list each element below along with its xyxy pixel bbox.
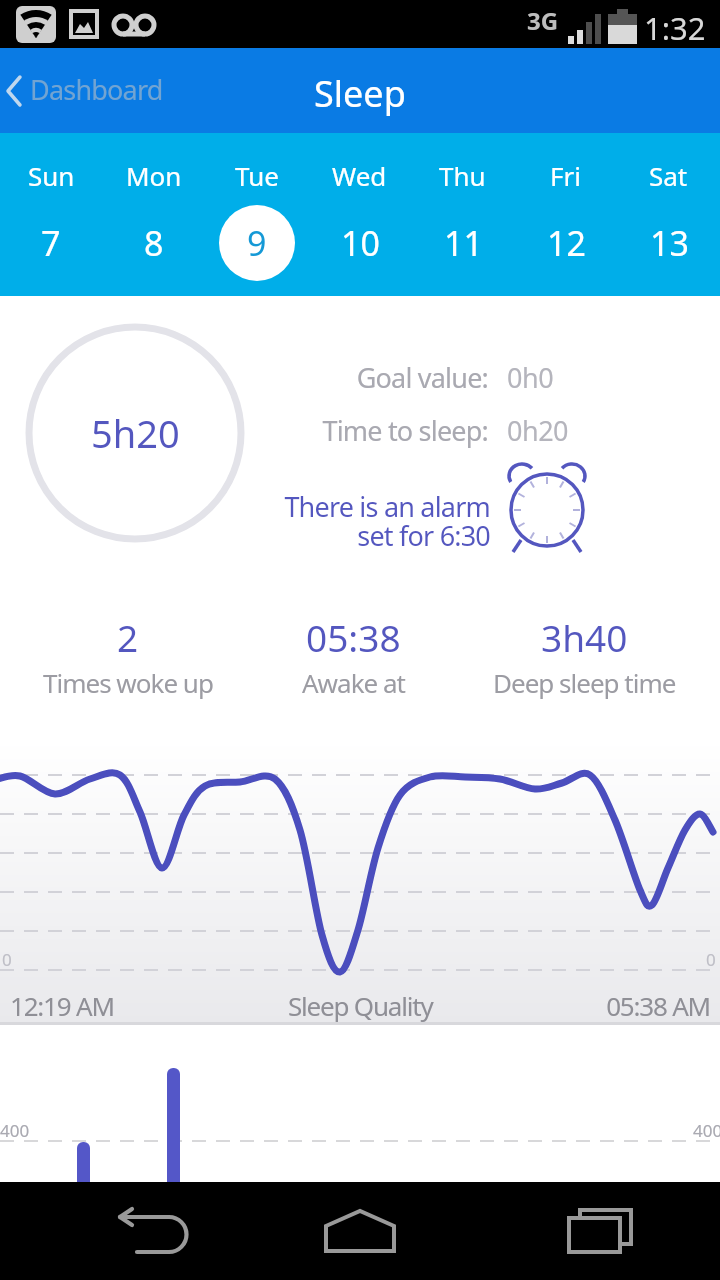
staticText: 0	[2, 948, 12, 971]
staticText: 3G	[527, 4, 559, 37]
button[interactable]	[505, 458, 589, 550]
button[interactable]: Mon	[102, 133, 205, 296]
button[interactable]	[240, 1182, 480, 1280]
button[interactable]: 05:38	[253, 612, 453, 697]
staticText: Tue	[235, 158, 279, 193]
button[interactable]: Fri	[514, 133, 617, 296]
staticText: Wed	[332, 158, 387, 193]
button[interactable]: Sun	[0, 133, 102, 296]
staticText: 3h40	[541, 612, 628, 662]
staticText: 9	[247, 220, 267, 266]
staticText: 400	[693, 1119, 720, 1142]
staticText: There is an alarm set for 6:30	[260, 488, 490, 554]
staticText: Deep sleep time	[493, 665, 676, 700]
staticText: 11	[444, 220, 483, 266]
button[interactable]: 2	[28, 612, 228, 697]
staticText: 0h0	[507, 359, 554, 396]
button[interactable]: Thu	[411, 133, 514, 296]
staticText: Sleep	[314, 69, 406, 118]
button[interactable]	[480, 1182, 720, 1280]
staticText: 8	[144, 220, 164, 266]
button[interactable]: 3h40	[464, 612, 704, 697]
staticText: Thu	[439, 158, 486, 193]
button[interactable]: Wed	[308, 133, 411, 296]
staticText: 1:32	[644, 7, 706, 49]
staticText: Awake at	[302, 665, 405, 700]
button[interactable]: Tue	[205, 133, 308, 296]
staticText: 7	[41, 220, 61, 266]
staticText: Time to sleep:	[260, 412, 488, 449]
staticText: 2	[117, 612, 139, 662]
staticText: Fri	[550, 158, 581, 193]
staticText: Dashboard	[30, 71, 163, 108]
staticText: Sun	[28, 158, 75, 193]
staticText: Sat	[649, 158, 688, 193]
staticText: Mon	[126, 158, 182, 193]
staticText: 400	[0, 1119, 30, 1142]
staticText: 05:38	[306, 612, 401, 662]
staticText: 13	[650, 220, 689, 266]
button[interactable]: Sat	[617, 133, 720, 296]
staticText: Goal value:	[280, 359, 488, 396]
staticText: 0h20	[507, 412, 569, 449]
staticText: 0	[706, 948, 716, 971]
staticText: 12:19 AM	[10, 988, 114, 1023]
staticText: Sleep Quality	[288, 988, 433, 1023]
staticText: 05:38 AM	[560, 988, 710, 1023]
staticText: 5h20	[91, 407, 180, 459]
button[interactable]: Dashboard	[4, 48, 159, 133]
staticText: 12	[547, 220, 586, 266]
staticText: Times woke up	[43, 665, 213, 700]
button[interactable]	[0, 1182, 240, 1280]
staticText: 10	[341, 220, 380, 266]
